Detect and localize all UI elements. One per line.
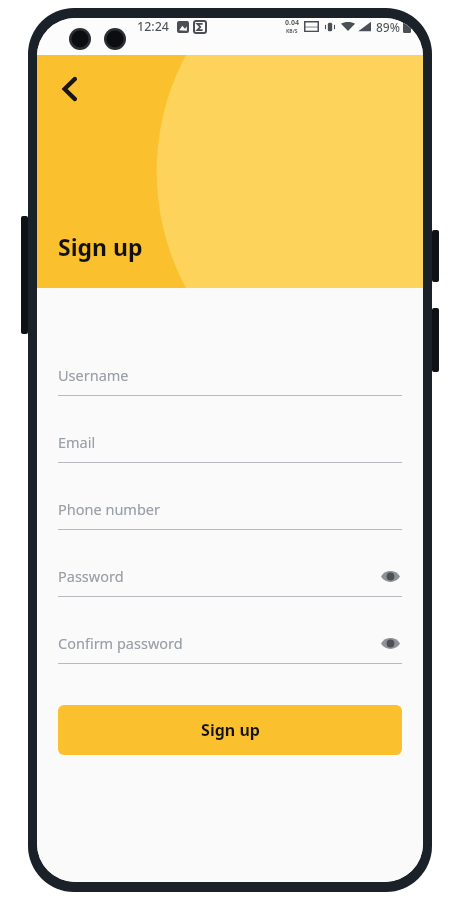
button[interactable]: Phone number xyxy=(58,496,402,530)
staticText: 12:24 xyxy=(137,18,170,35)
staticText: Sign up xyxy=(201,719,260,741)
button[interactable]: Password xyxy=(58,563,402,597)
button[interactable]: Confirm password xyxy=(58,630,402,664)
staticText: Password xyxy=(58,566,124,586)
staticText: 89% xyxy=(376,19,400,35)
button[interactable]: Show password xyxy=(378,564,402,588)
button[interactable]: Show password xyxy=(378,631,402,655)
button[interactable]: Back xyxy=(47,67,91,111)
staticText: 0.04 xyxy=(285,18,299,28)
staticText: Confirm password xyxy=(58,633,183,653)
staticText: Sign up xyxy=(58,231,143,262)
staticText: Phone number xyxy=(58,499,160,519)
button[interactable]: Sign up xyxy=(58,705,402,755)
button[interactable]: Email xyxy=(58,429,402,463)
staticText: Username xyxy=(58,365,129,385)
staticText: Email xyxy=(58,432,96,452)
button[interactable]: Username xyxy=(58,362,402,396)
staticText: KB/S xyxy=(286,28,298,35)
